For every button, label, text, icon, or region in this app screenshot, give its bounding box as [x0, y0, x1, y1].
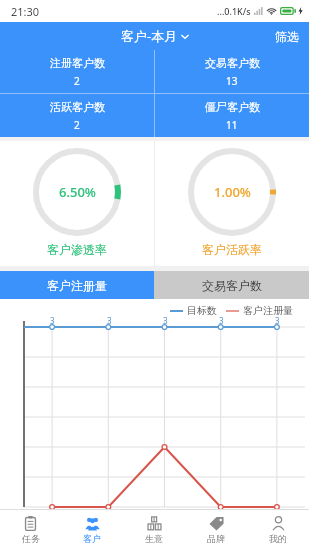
other: 品牌 [209, 516, 224, 531]
staticText: 注册客户数 [50, 56, 105, 70]
other: 客户 [85, 516, 100, 531]
staticText: 交易客户数 [202, 278, 262, 293]
staticText: 1.00% [214, 183, 251, 201]
staticText: ...0.1K/s [217, 5, 251, 17]
button[interactable]: 注册客户数 [0, 50, 154, 93]
button[interactable]: 交易客户数 [154, 271, 309, 299]
other: 我的 [271, 516, 286, 531]
other: 任务 [23, 516, 38, 531]
button[interactable]: 活跃客户数 [0, 94, 154, 137]
staticText: 客户活跃率 [202, 242, 262, 257]
staticText: 21:30 [11, 4, 40, 19]
staticText: 品牌 [207, 533, 225, 544]
button[interactable]: 僵尸客户数 [155, 94, 309, 137]
staticText: 客户注册量 [47, 278, 107, 293]
staticText: 2 [74, 118, 80, 132]
staticText: 生意 [145, 533, 163, 544]
staticText: 僵尸客户数 [205, 100, 260, 114]
staticText: 客户渗透率 [47, 242, 107, 257]
staticText: 13 [226, 74, 238, 88]
staticText: 客户注册量 [243, 304, 293, 317]
button[interactable]: 生意 [123, 510, 185, 550]
staticText: 3 [107, 315, 112, 326]
staticText: 6.50% [59, 183, 96, 201]
button[interactable]: 6.50% [0, 141, 154, 266]
button[interactable]: 交易客户数 [155, 50, 309, 93]
staticText: 3 [50, 315, 55, 326]
staticText: 2 [74, 74, 80, 88]
button[interactable]: 任务 [0, 510, 61, 550]
button[interactable]: 客户 [61, 510, 123, 550]
staticText: 3 [219, 315, 224, 326]
other: 生意 [147, 516, 162, 531]
staticText: 3 [275, 315, 280, 326]
staticText: 客户-本月 [121, 27, 178, 45]
staticText: 交易客户数 [205, 56, 260, 70]
button[interactable]: 客户注册量 [0, 271, 154, 299]
staticText: 客户 [83, 533, 101, 544]
staticText: 目标数 [187, 304, 217, 317]
button[interactable]: 我的 [247, 510, 309, 550]
staticText: 活跃客户数 [50, 100, 105, 114]
staticText: 任务 [22, 533, 40, 544]
button[interactable]: 品牌 [185, 510, 247, 550]
staticText: 我的 [269, 533, 287, 544]
staticText: 3 [163, 315, 168, 326]
button[interactable]: 1.00% [155, 141, 309, 266]
staticText: 11 [226, 118, 238, 132]
button[interactable]: 筛选 [265, 23, 309, 50]
button[interactable]: 客户-本月 [113, 23, 197, 49]
